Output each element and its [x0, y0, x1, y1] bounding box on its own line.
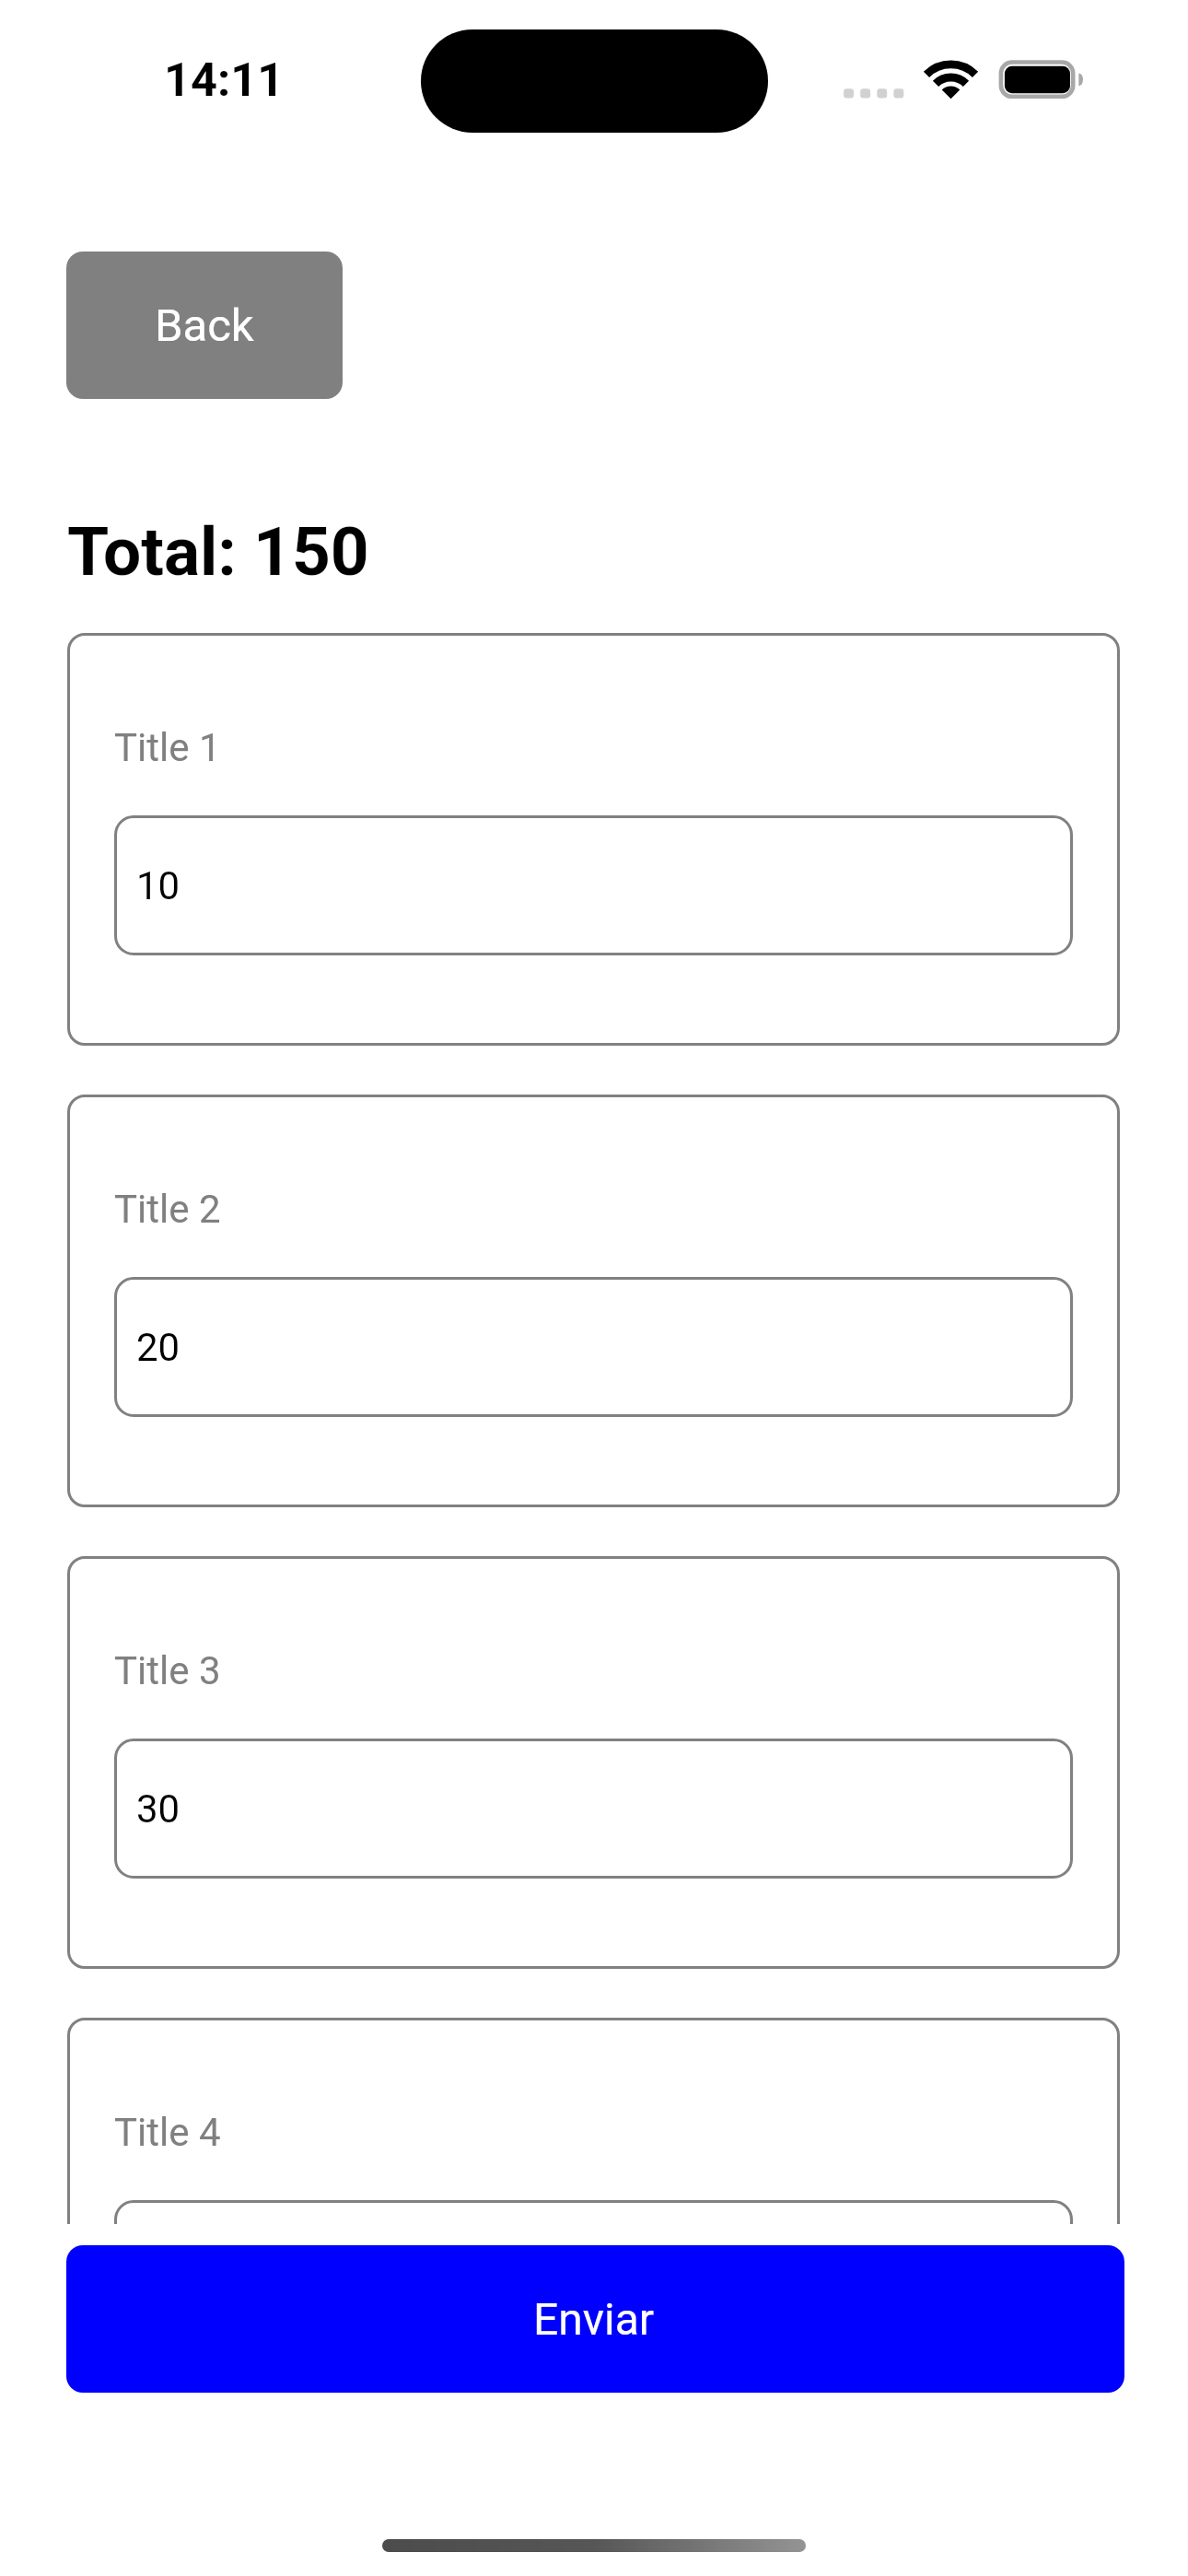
- staticText: Enviar: [533, 2293, 655, 2345]
- staticText: Title 3: [114, 1648, 221, 1693]
- staticText: Total: 150: [67, 512, 369, 591]
- button[interactable]: Title 4 value field: [114, 2200, 1073, 2224]
- button[interactable]: Title 3: [67, 1556, 1120, 1969]
- staticText: 14:11: [164, 53, 285, 107]
- staticText: Back: [155, 299, 254, 352]
- staticText: 30: [136, 1786, 181, 1832]
- button[interactable]: Title 3 value field: [114, 1739, 1073, 1879]
- button[interactable]: Title 2: [67, 1095, 1120, 1507]
- button[interactable]: Title 1: [67, 633, 1120, 1046]
- button[interactable]: Title 1 value field: [114, 815, 1073, 955]
- staticText: Title 1: [114, 725, 221, 770]
- button[interactable]: Enviar: [66, 2245, 1124, 2393]
- staticText: 20: [136, 1325, 181, 1370]
- staticText: Title 4: [114, 2110, 221, 2155]
- other: Status icons: [829, 55, 1096, 111]
- button[interactable]: Title 2 value field: [114, 1277, 1073, 1417]
- button[interactable]: Back: [66, 252, 343, 399]
- button[interactable]: Title 4: [67, 2018, 1120, 2224]
- other: Home indicator: [382, 2539, 806, 2552]
- staticText: Title 2: [114, 1187, 221, 1232]
- staticText: 10: [136, 863, 181, 908]
